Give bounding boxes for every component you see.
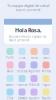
staticText: seguro y personal (15, 8, 40, 12)
button[interactable]: Ajustes (28, 89, 39, 100)
button[interactable]: Llamada (16, 89, 27, 100)
staticText: Perfil (6, 56, 14, 59)
button[interactable]: Vacunas (16, 75, 27, 86)
staticText: Ayuda (42, 97, 50, 100)
staticText: Alertas (41, 69, 50, 73)
staticText: Hola Rosa, (15, 27, 41, 34)
staticText: Datos (42, 56, 49, 59)
staticText: Notas (30, 56, 37, 59)
button[interactable]: Pagos (40, 75, 51, 86)
button[interactable]: Salud (4, 61, 15, 73)
staticText: Llamada (17, 97, 26, 100)
staticText: Historial (28, 83, 39, 86)
button[interactable]: Datos (40, 48, 51, 59)
staticText: Examen (5, 83, 14, 86)
button[interactable]: Examen (4, 75, 15, 86)
button[interactable]: Historial (28, 75, 39, 86)
staticText: Recetas (17, 69, 27, 73)
staticText: Bienvenida a tu espacio de salud persona… (9, 35, 47, 42)
staticText: Ajustes (29, 97, 39, 100)
button[interactable]: Citas (16, 48, 27, 59)
staticText: Pagos (42, 83, 50, 86)
button[interactable]: Recetas (16, 61, 27, 73)
staticText: Citas (19, 56, 25, 59)
button[interactable]: Chat (4, 89, 15, 100)
staticText: Chat (7, 97, 13, 100)
button[interactable]: Ayuda (40, 89, 51, 100)
button[interactable]: Notas (28, 48, 39, 59)
button[interactable]: Agenda (28, 61, 39, 73)
staticText: Vacunas (17, 83, 27, 86)
button[interactable]: Alertas (40, 61, 51, 73)
staticText: Tu equipo digital de salud (7, 3, 49, 8)
staticText: Agenda (28, 69, 39, 73)
button[interactable]: Perfil (4, 48, 15, 59)
staticText: Salud (6, 69, 13, 73)
